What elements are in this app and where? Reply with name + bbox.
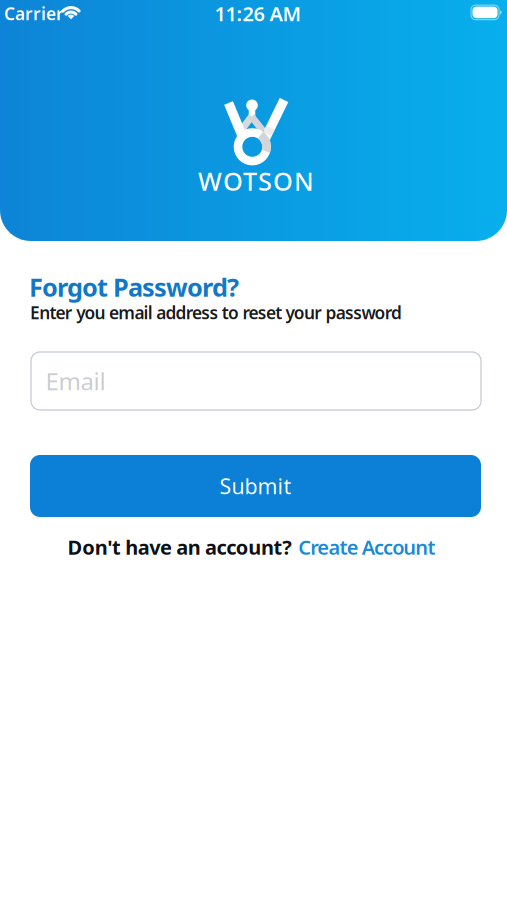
staticText: Carrier [4,2,64,25]
staticText: Don't have an account? [68,534,292,560]
staticText: Forgot Password? [29,270,239,304]
staticText: Enter you email address to reset your pa… [30,301,402,324]
button[interactable]: Submit [30,455,481,517]
staticText: 11:26 AM [214,0,301,27]
staticText: Email [45,365,105,397]
staticText: WOTSON [198,164,314,198]
staticText: Submit [219,472,291,500]
button[interactable]: Create Account [298,534,435,560]
button[interactable]: Email [31,352,481,410]
staticText: Create Account [298,534,435,560]
